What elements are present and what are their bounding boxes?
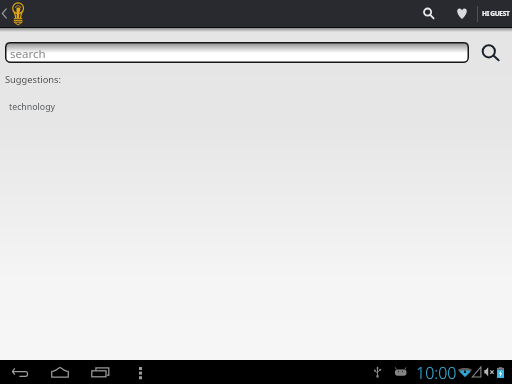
button[interactable]: Search (477, 41, 501, 64)
staticText: HI GUEST (482, 9, 510, 18)
button[interactable]: HI GUEST (479, 0, 512, 27)
staticText: 10:00 (416, 362, 457, 384)
button[interactable]: technology (0, 100, 512, 114)
button[interactable]: More options (128, 360, 152, 384)
button[interactable]: Search (417, 1, 439, 26)
staticText: technology (9, 101, 56, 113)
button[interactable]: Home (11, 0, 27, 26)
button[interactable]: Back (4, 360, 36, 384)
button[interactable]: Recents (85, 360, 117, 384)
staticText: search (10, 46, 46, 62)
button[interactable]: Favorites (451, 1, 472, 26)
staticText: Suggestions: (5, 73, 62, 86)
button[interactable]: Home (44, 360, 76, 384)
button[interactable]: Back (0, 0, 10, 27)
button[interactable]: search (5, 42, 469, 63)
